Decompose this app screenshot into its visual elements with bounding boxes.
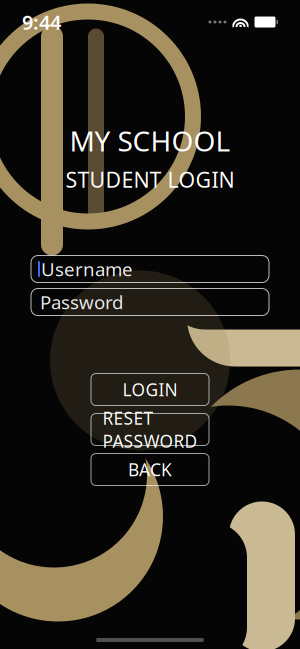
button[interactable]: BACK (91, 453, 209, 485)
button[interactable]: RESET PASSWORD (91, 413, 209, 445)
staticText: Password (40, 290, 123, 314)
button[interactable]: Password (31, 288, 269, 315)
staticText: BACK (128, 458, 172, 481)
staticText: Username (41, 257, 133, 281)
staticText: MY SCHOOL (69, 122, 230, 159)
button[interactable]: LOGIN (91, 373, 209, 405)
staticText: STUDENT LOGIN (65, 165, 234, 193)
staticText: 9:44 (22, 9, 61, 35)
button[interactable]: Username (31, 255, 269, 282)
staticText: RESET PASSWORD (102, 406, 197, 452)
staticText: LOGIN (122, 378, 177, 401)
